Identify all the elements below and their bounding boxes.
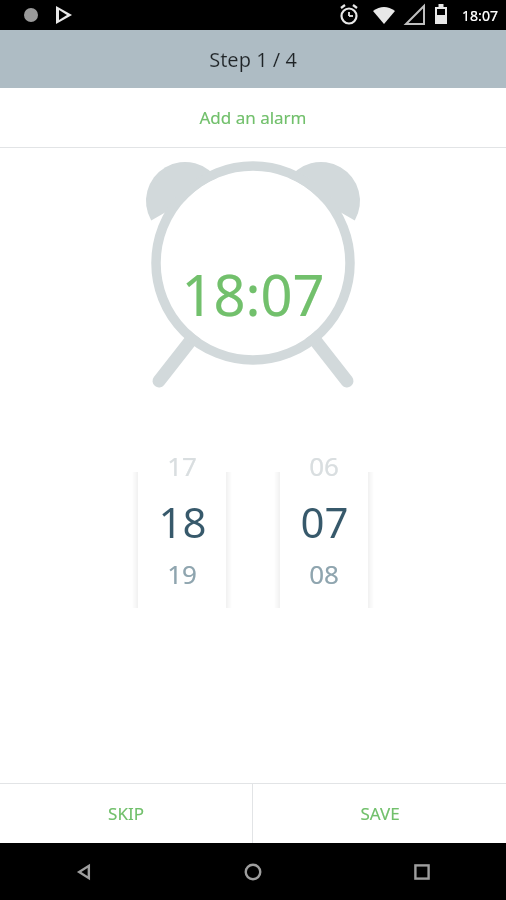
button[interactable]: 06 [274,446,374,616]
staticText: Add an alarm [199,106,307,129]
staticText: 19 [167,556,197,591]
button[interactable]: Home [168,843,337,900]
staticText: 08 [309,556,339,591]
staticText: 17 [167,448,197,483]
button[interactable]: Add an alarm [0,88,506,147]
staticText: 18 [158,493,207,550]
button[interactable]: SKIP [0,784,252,843]
staticText: 06 [309,448,339,483]
button[interactable]: Recents [337,843,506,900]
staticText: 07 [300,493,349,550]
staticText: 18:07 [181,256,325,332]
button[interactable]: 17 [132,446,232,616]
staticText: Step 1 / 4 [209,46,297,73]
staticText: SAVE [360,802,400,825]
button[interactable]: SAVE [253,784,506,843]
staticText: SKIP [108,802,144,825]
staticText: 18:07 [462,6,498,25]
button[interactable]: Back [0,843,168,900]
